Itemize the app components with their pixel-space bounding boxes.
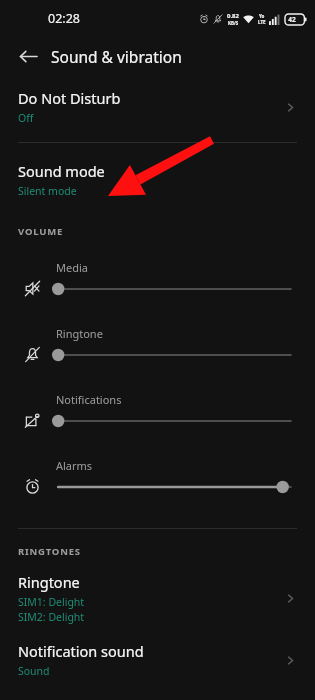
- staticText: Do Not Disturb: [18, 88, 121, 108]
- button[interactable]: Ringtone: [0, 314, 315, 380]
- staticText: 42: [288, 15, 296, 24]
- staticText: Media: [56, 260, 88, 275]
- staticText: 02:28: [48, 10, 80, 27]
- button[interactable]: Media: [0, 248, 315, 314]
- staticText: KB/S: [228, 20, 239, 26]
- staticText: Yo: [259, 13, 265, 19]
- button[interactable]: Alarms: [0, 446, 315, 512]
- staticText: RINGTONES: [18, 545, 81, 558]
- staticText: Silent mode: [18, 184, 77, 198]
- staticText: LTE: [258, 19, 266, 25]
- button[interactable]: Notifications: [0, 380, 315, 446]
- staticText: Ringtone: [18, 572, 80, 592]
- button[interactable]: Ringtone: [0, 568, 315, 629]
- staticText: Alarms: [56, 458, 93, 473]
- staticText: Off: [18, 111, 34, 125]
- staticText: Notification sound: [18, 641, 144, 661]
- button[interactable]: Do Not Disturb: [0, 84, 315, 130]
- staticText: Notifications: [56, 392, 122, 407]
- button[interactable]: Notification sound: [0, 637, 315, 683]
- staticText: 0.82: [227, 12, 239, 20]
- staticText: VOLUME: [18, 225, 64, 238]
- staticText: Sound & vibration: [51, 46, 182, 67]
- button[interactable]: Back: [12, 40, 44, 72]
- staticText: Ringtone: [56, 326, 103, 341]
- staticText: SIM1: Delight: [18, 595, 85, 609]
- button[interactable]: Sound mode: [0, 157, 315, 203]
- staticText: SIM2: Delight: [18, 610, 85, 624]
- staticText: Sound: [18, 664, 50, 678]
- staticText: Sound mode: [18, 161, 105, 181]
